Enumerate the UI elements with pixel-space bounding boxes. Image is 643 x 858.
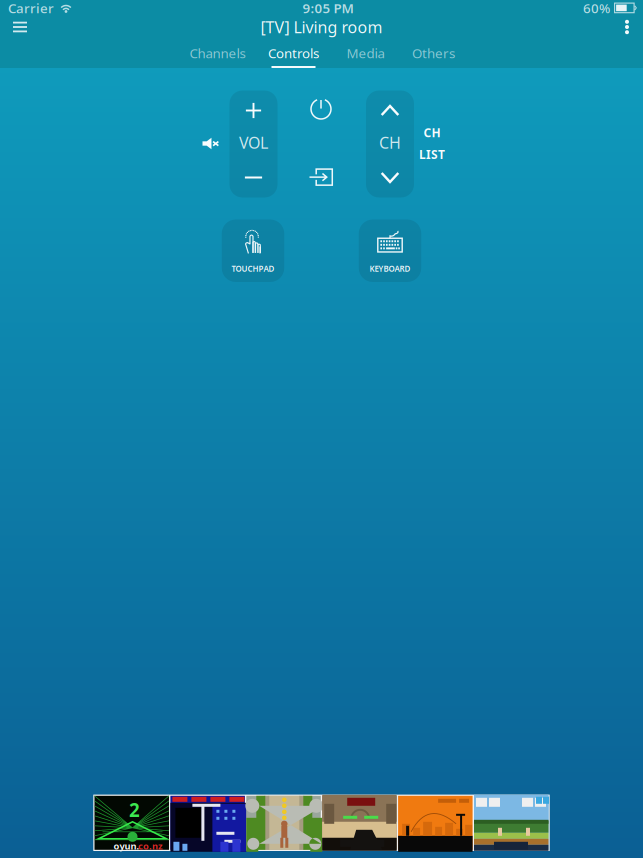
staticText: KEYBOARD [369, 263, 410, 274]
button[interactable]: Advertisement [93, 795, 550, 851]
staticText: CH [423, 125, 440, 140]
staticText: CH [379, 132, 401, 153]
staticText: co.nz [138, 840, 163, 852]
button[interactable]: Source [309, 165, 333, 189]
button[interactable]: Mute [193, 126, 227, 160]
staticText: oyun. [113, 840, 139, 852]
staticText: VOL [239, 132, 268, 153]
button[interactable]: Others [403, 46, 463, 68]
staticText: Others [412, 44, 455, 62]
staticText: 60% [583, 0, 610, 17]
staticText: [TV] Living room [260, 16, 382, 38]
staticText: Channels [189, 44, 245, 62]
staticText: Controls [268, 44, 319, 62]
button[interactable]: Channels [183, 46, 251, 68]
staticText: TOUCHPAD [231, 263, 274, 274]
staticText: 2 [129, 797, 140, 822]
staticText: LIST [419, 146, 445, 162]
button[interactable]: Power [310, 98, 332, 120]
staticText: 9:05 PM [302, 0, 353, 17]
button[interactable]: CH [410, 126, 454, 160]
staticText: Carrier [8, 0, 54, 17]
button[interactable]: KEYBOARD [359, 219, 421, 282]
button[interactable]: TOUCHPAD [222, 219, 284, 282]
button[interactable]: More options [610, 12, 643, 42]
button[interactable]: VOL [229, 90, 277, 197]
button[interactable]: CH [366, 90, 414, 197]
button[interactable]: Media [335, 46, 395, 68]
staticText: Media [346, 44, 384, 62]
button[interactable]: Menu [0, 12, 42, 42]
button[interactable]: Controls [259, 46, 327, 68]
